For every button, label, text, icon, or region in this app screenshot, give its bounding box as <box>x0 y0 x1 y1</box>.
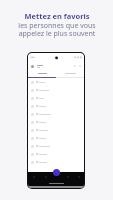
button[interactable] <box>31 78 81 86</box>
staticText: Mettez en favoris <box>24 11 90 21</box>
button[interactable] <box>31 94 81 102</box>
button[interactable] <box>31 62 81 70</box>
button[interactable] <box>31 142 81 150</box>
button[interactable]: Contacts <box>62 172 73 181</box>
button[interactable]: Nouveau contact <box>53 169 60 176</box>
button[interactable] <box>31 158 81 166</box>
button[interactable]: Recents <box>40 172 51 181</box>
button[interactable]: Favoris <box>28 172 40 181</box>
button[interactable] <box>56 70 84 77</box>
staticText: les personnes que vous appelez le plus s… <box>18 21 96 38</box>
button[interactable] <box>31 110 81 118</box>
button[interactable] <box>31 150 81 158</box>
button[interactable] <box>31 102 81 110</box>
button[interactable] <box>28 70 56 77</box>
button[interactable] <box>31 134 81 142</box>
button[interactable] <box>31 86 81 94</box>
button[interactable] <box>31 126 81 134</box>
button[interactable] <box>31 118 81 126</box>
button[interactable]: Plus <box>73 172 84 181</box>
